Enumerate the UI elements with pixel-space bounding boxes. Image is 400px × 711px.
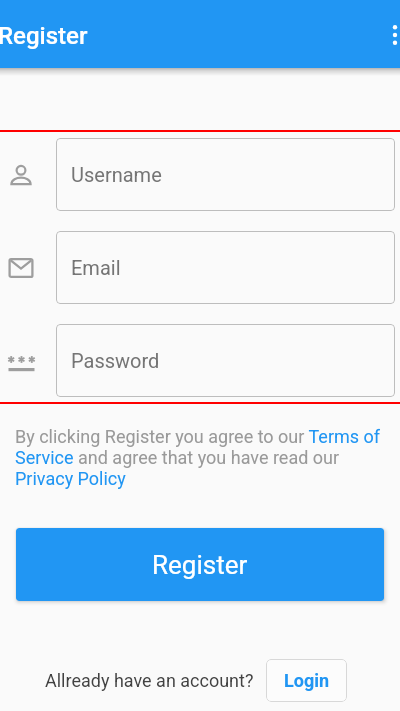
staticText: Register	[0, 22, 88, 50]
button[interactable]: Register	[16, 528, 384, 601]
button[interactable]: More options	[371, 11, 400, 59]
staticText: By clicking Register you agree to our Te…	[15, 426, 382, 489]
button[interactable]: Email	[56, 231, 395, 304]
staticText: Password	[71, 349, 160, 372]
staticText: Allready have an account?	[45, 670, 254, 691]
staticText: Email	[71, 256, 121, 279]
staticText: Username	[71, 163, 162, 186]
button[interactable]: Password	[56, 324, 395, 397]
staticText: Register	[152, 550, 248, 580]
button[interactable]: Username	[56, 138, 395, 211]
button[interactable]: Login	[266, 659, 347, 702]
staticText: Login	[284, 670, 330, 691]
